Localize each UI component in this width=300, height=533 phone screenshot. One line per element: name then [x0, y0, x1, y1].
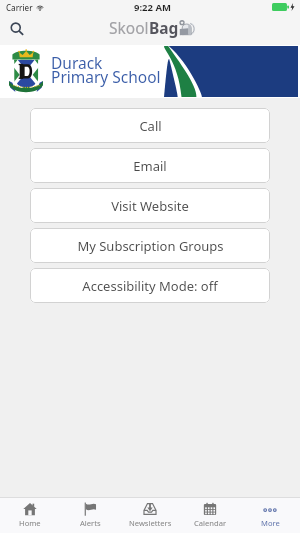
button[interactable]: Alerts — [60, 498, 120, 533]
button[interactable]: Accessibility Mode: off — [30, 268, 270, 303]
staticText: Durack — [51, 52, 103, 73]
button[interactable]: Call — [30, 108, 270, 143]
staticText: More — [261, 518, 280, 528]
button[interactable]: Visit Website — [30, 188, 270, 223]
button[interactable]: More — [240, 498, 300, 533]
staticText: Visit Website — [111, 197, 189, 215]
button[interactable]: Calendar — [180, 498, 240, 533]
button[interactable]: My Subscription Groups — [30, 228, 270, 263]
staticText: Calendar — [194, 518, 227, 528]
staticText: Newsletters — [129, 518, 172, 528]
staticText: Primary School — [51, 66, 161, 87]
staticText: Carrier — [6, 2, 33, 13]
staticText: Email — [133, 157, 167, 175]
button[interactable]: Search — [5, 17, 29, 41]
staticText: Call — [139, 117, 162, 135]
staticText: Accessibility Mode: off — [82, 277, 218, 295]
staticText: Bag — [149, 17, 179, 38]
staticText: 9:22 AM — [134, 1, 171, 14]
staticText: Skool — [109, 17, 149, 38]
button[interactable]: Home — [0, 498, 60, 533]
staticText: My Subscription Groups — [77, 237, 224, 255]
button[interactable]: Newsletters — [120, 498, 180, 533]
staticText: Alerts — [80, 518, 101, 528]
button[interactable]: Email — [30, 148, 270, 183]
staticText: Home — [19, 518, 41, 528]
